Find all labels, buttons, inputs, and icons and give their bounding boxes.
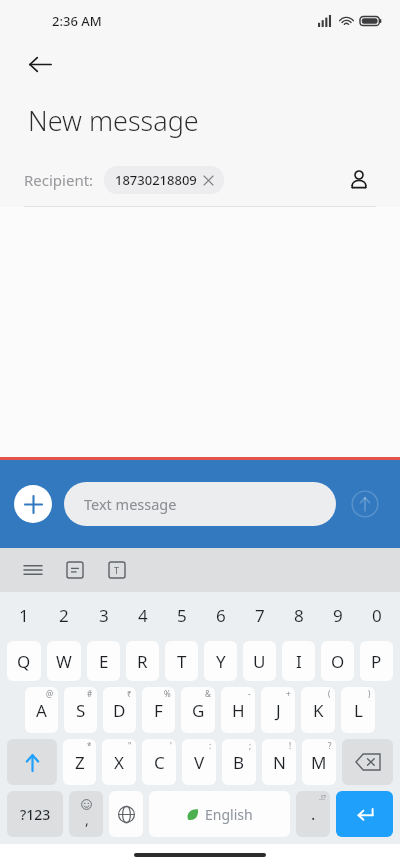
- staticText: R: [137, 650, 148, 673]
- staticText: ): [368, 688, 371, 699]
- staticText: :: [209, 740, 212, 751]
- button[interactable]: Text message: [64, 482, 336, 526]
- staticText: E: [99, 650, 109, 673]
- staticText: ;: [249, 740, 252, 751]
- button[interactable]: English: [149, 791, 290, 837]
- button[interactable]: W: [47, 641, 81, 681]
- staticText: X: [114, 751, 124, 774]
- staticText: 2:36 AM: [52, 12, 102, 30]
- button[interactable]: .: [296, 791, 330, 837]
- button[interactable]: Add attachment: [14, 485, 52, 523]
- staticText: 0: [372, 604, 382, 627]
- button[interactable]: Back: [18, 42, 62, 86]
- button[interactable]: Send: [344, 483, 386, 525]
- button[interactable]: 6: [201, 592, 240, 638]
- button[interactable]: 0: [357, 592, 396, 638]
- staticText: *: [87, 740, 92, 751]
- button[interactable]: 1: [4, 592, 44, 638]
- staticText: L: [354, 699, 363, 722]
- button[interactable]: 9: [318, 592, 357, 638]
- button[interactable]: O: [321, 641, 354, 681]
- button[interactable]: Y: [204, 641, 237, 681]
- button[interactable]: G: [181, 687, 215, 733]
- button[interactable]: A: [25, 687, 58, 733]
- staticText: H: [232, 699, 245, 722]
- staticText: 8: [294, 604, 304, 627]
- button[interactable]: X: [102, 739, 136, 785]
- button[interactable]: 4: [123, 592, 162, 638]
- staticText: 2: [59, 604, 69, 627]
- button[interactable]: 7: [240, 592, 279, 638]
- button[interactable]: Text tools: [102, 555, 132, 585]
- button[interactable]: 18730218809: [104, 166, 224, 194]
- staticText: N: [273, 751, 286, 774]
- staticText: .!?: [319, 793, 326, 803]
- staticText: J: [276, 699, 281, 722]
- button[interactable]: S: [64, 687, 97, 733]
- button[interactable]: C: [142, 739, 176, 785]
- button[interactable]: Shift: [7, 739, 57, 785]
- staticText: 9: [333, 604, 343, 627]
- staticText: !: [289, 740, 292, 751]
- staticText: #: [87, 688, 93, 699]
- button[interactable]: T: [165, 641, 198, 681]
- button[interactable]: Change language: [109, 791, 143, 837]
- button[interactable]: P: [360, 641, 393, 681]
- staticText: ?: [328, 740, 332, 751]
- staticText: Z: [75, 751, 85, 774]
- staticText: T: [177, 650, 187, 673]
- button[interactable]: U: [243, 641, 276, 681]
- button[interactable]: B: [222, 739, 256, 785]
- staticText: Recipient:: [24, 170, 94, 190]
- staticText: F: [154, 699, 163, 722]
- button[interactable]: 3: [84, 592, 123, 638]
- button[interactable]: ?123: [7, 791, 63, 837]
- staticText: &: [205, 688, 211, 699]
- button[interactable]: Z: [63, 739, 96, 785]
- button[interactable]: M: [302, 739, 336, 785]
- button[interactable]: J: [261, 687, 295, 733]
- staticText: ?123: [20, 805, 51, 824]
- staticText: ₹: [127, 688, 132, 699]
- button[interactable]: K: [301, 687, 335, 733]
- button[interactable]: H: [221, 687, 255, 733]
- staticText: O: [331, 650, 345, 673]
- button[interactable]: 2: [44, 592, 84, 638]
- staticText: K: [313, 699, 324, 722]
- staticText: %: [164, 688, 171, 699]
- staticText: 1: [19, 604, 29, 627]
- button[interactable]: I: [282, 641, 315, 681]
- button[interactable]: L: [341, 687, 375, 733]
- button[interactable]: Enter: [336, 791, 393, 837]
- staticText: (: [328, 688, 331, 699]
- staticText: P: [371, 650, 382, 673]
- button[interactable]: Q: [7, 641, 41, 681]
- staticText: G: [192, 699, 205, 722]
- button[interactable]: 8: [279, 592, 318, 638]
- button[interactable]: N: [262, 739, 296, 785]
- button[interactable]: 5: [162, 592, 201, 638]
- staticText: @: [46, 688, 54, 699]
- button[interactable]: R: [126, 641, 159, 681]
- staticText: D: [113, 699, 126, 722]
- button[interactable]: Pick contact: [342, 163, 376, 197]
- button[interactable]: Menu: [18, 555, 48, 585]
- button[interactable]: V: [182, 739, 216, 785]
- staticText: U: [253, 650, 266, 673]
- staticText: 5: [177, 604, 187, 627]
- staticText: Y: [216, 650, 226, 673]
- button[interactable]: E: [87, 641, 120, 681]
- button[interactable]: Emoji and comma: [69, 791, 103, 837]
- staticText: .: [311, 803, 316, 825]
- button[interactable]: D: [103, 687, 136, 733]
- staticText: W: [56, 650, 72, 673]
- staticText: -: [248, 688, 251, 699]
- button[interactable]: Backspace: [342, 739, 393, 785]
- staticText: ,: [85, 810, 89, 829]
- button[interactable]: F: [142, 687, 175, 733]
- staticText: +: [286, 688, 291, 699]
- staticText: 3: [99, 604, 109, 627]
- staticText: ': [170, 740, 172, 751]
- button[interactable]: Clipboard: [60, 555, 90, 585]
- staticText: ": [128, 740, 132, 751]
